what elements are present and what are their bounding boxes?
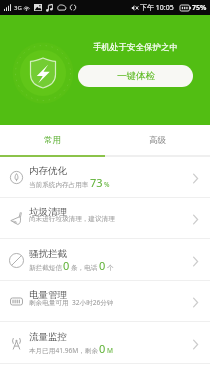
other: 电量管理 — [190, 297, 200, 307]
staticText: 电量管理 — [29, 289, 67, 301]
button[interactable]: 骚扰拦截 — [0, 240, 210, 281]
staticText: 新拦截短信 — [29, 264, 62, 272]
staticText: 当前系统内存占用率 — [29, 181, 89, 189]
other: 骚扰拦截 — [190, 256, 200, 266]
staticText: 0 — [99, 258, 106, 273]
button[interactable]: 电量管理 — [0, 281, 210, 322]
staticText: 骚扰拦截 — [29, 248, 67, 260]
staticText: 73 — [90, 175, 103, 190]
staticText: 尚未进行垃圾清理，建议清理 — [29, 215, 115, 223]
staticText: 条，电话 — [71, 264, 98, 272]
staticText: 一键体检 — [117, 70, 155, 82]
staticText: 下午 10:05 — [140, 3, 174, 13]
staticText: M — [107, 346, 113, 355]
staticText: 3G — [14, 4, 22, 12]
staticText: 75% — [192, 3, 207, 13]
button[interactable]: 垃圾清理 — [0, 198, 210, 239]
button[interactable]: 内存优化 — [0, 157, 210, 198]
staticText: 流量监控 — [29, 331, 67, 343]
staticText: 垃圾清理 — [29, 206, 67, 218]
staticText: 个 — [107, 264, 114, 272]
button[interactable]: 一键体检 — [78, 65, 193, 87]
staticText: 高级 — [149, 135, 166, 146]
button[interactable]: 流量监控 — [0, 323, 210, 364]
button[interactable]: 常用 — [0, 125, 105, 155]
staticText: 0 — [63, 258, 70, 273]
other: 流量监控 — [190, 339, 200, 349]
other: 内存优化 — [190, 173, 200, 183]
staticText: 手机处于安全保护之中 — [93, 42, 178, 53]
staticText: 0 — [99, 341, 106, 356]
staticText: 常用 — [44, 135, 61, 146]
staticText: 剩余电量可用 32小时26分钟 — [29, 298, 114, 307]
staticText: 内存优化 — [29, 165, 67, 177]
staticText: % — [104, 180, 110, 189]
other: 垃圾清理 — [190, 214, 200, 224]
staticText: 本月已用41.96M，剩余 — [29, 346, 98, 355]
button[interactable]: 高级 — [105, 125, 210, 155]
